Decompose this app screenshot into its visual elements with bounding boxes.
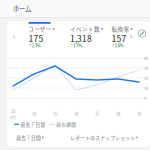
staticText: 転換率 [111, 25, 129, 33]
staticText: ↑ [70, 43, 73, 48]
staticText: レポートのスナップショット [70, 134, 135, 141]
button[interactable]: レポートのスナップショット [70, 134, 138, 141]
staticText: 157 [111, 32, 126, 44]
button[interactable]: Next metric [128, 31, 134, 41]
staticText: 過去 7 日間 [21, 121, 46, 128]
staticText: 2.3% [32, 42, 41, 48]
staticText: 18 [116, 111, 120, 117]
staticText: ホーム [13, 4, 31, 13]
staticText: 前の期間 [56, 121, 76, 128]
button[interactable]: Previous metric [11, 31, 17, 41]
staticText: › [130, 31, 132, 41]
staticText: 15 [53, 111, 57, 117]
staticText: 16 [74, 111, 78, 117]
button[interactable]: イベント数 [70, 21, 103, 48]
staticText: イベント数 [70, 25, 100, 33]
button[interactable]: ユーザー [28, 21, 54, 48]
staticText: 14 [32, 111, 36, 117]
staticText: 8月 [10, 115, 16, 120]
staticText: 1,318 [70, 32, 92, 44]
staticText: 17 [95, 111, 99, 117]
staticText: ▾ [42, 135, 44, 140]
button[interactable]: 転換率 [111, 21, 132, 48]
button[interactable]: Realtime overview [137, 29, 146, 38]
staticText: ▾ [101, 26, 103, 31]
staticText: ‹ [13, 31, 15, 41]
staticText: 19 [137, 111, 141, 117]
staticText: 13 [11, 108, 15, 114]
staticText: ▾ [136, 135, 138, 140]
staticText: 過去 7 日間 [16, 134, 41, 141]
staticText: 40 [144, 55, 148, 61]
staticText: 10 [144, 85, 148, 91]
staticText: ユーザー [28, 25, 51, 33]
staticText: 20 [144, 75, 148, 81]
staticText: 2.6% [115, 42, 124, 48]
staticText: 0 [144, 95, 146, 101]
staticText: 175 [28, 32, 43, 44]
button[interactable]: 過去 7 日間 [16, 134, 44, 141]
staticText: 30 [144, 65, 148, 71]
staticText: ▾ [130, 26, 132, 31]
staticText: ▾ [52, 26, 54, 31]
staticText: 1.7% [73, 42, 82, 48]
staticText: ↑ [111, 43, 114, 48]
staticText: ↑ [28, 43, 31, 48]
